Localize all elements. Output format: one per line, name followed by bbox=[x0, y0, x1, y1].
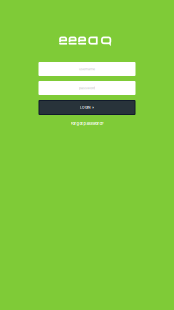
button[interactable]: Forgot password? bbox=[70, 121, 103, 126]
staticText: username bbox=[79, 67, 95, 71]
staticText: LOGIN » bbox=[80, 105, 94, 109]
button[interactable]: LOGIN » bbox=[38, 100, 135, 115]
staticText: password bbox=[79, 86, 95, 90]
staticText: Forgot password? bbox=[70, 121, 103, 126]
